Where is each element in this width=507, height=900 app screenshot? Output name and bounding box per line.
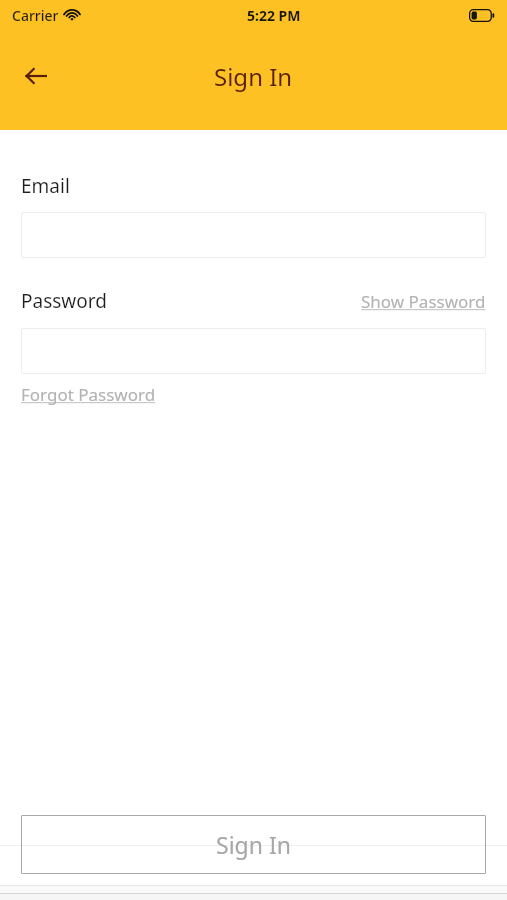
staticText: 5:22 PM — [247, 6, 301, 25]
button[interactable] — [21, 212, 486, 258]
staticText: Show Password — [361, 290, 486, 313]
staticText: Sign In — [214, 60, 293, 93]
staticText: Sign In — [216, 829, 291, 860]
button[interactable]: Back — [14, 54, 58, 98]
button[interactable] — [21, 328, 486, 374]
button[interactable]: Show Password — [361, 290, 486, 313]
staticText: Forgot Password — [21, 383, 156, 406]
staticText: Password — [21, 288, 107, 314]
button[interactable]: Sign In — [21, 815, 486, 874]
staticText: Email — [21, 173, 70, 199]
button[interactable]: Forgot Password — [21, 383, 156, 406]
staticText: Carrier — [12, 6, 59, 25]
